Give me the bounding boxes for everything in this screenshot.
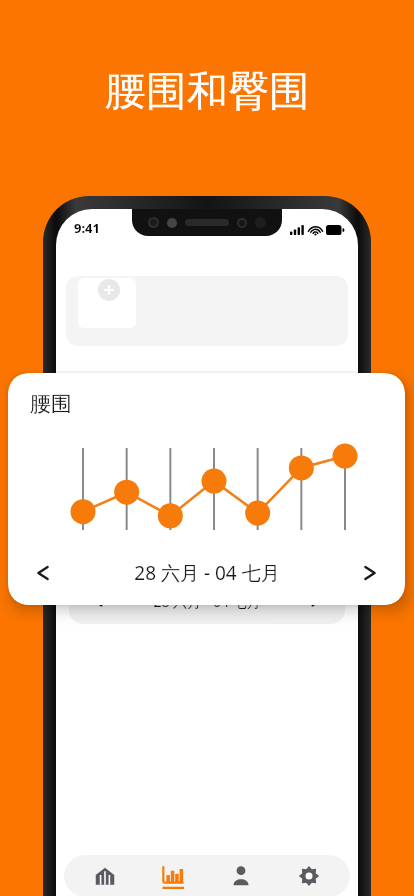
staticText: 腰围和臀围: [105, 66, 310, 118]
button[interactable]: Profile: [214, 855, 268, 896]
staticText: 28 六月 - 04 七月: [153, 592, 261, 611]
button[interactable]: Home: [78, 855, 132, 896]
staticText: 28 六月 - 04 七月: [134, 560, 280, 586]
button[interactable]: Previous week: [83, 586, 113, 616]
button[interactable]: [66, 276, 348, 346]
button[interactable]: Next week: [355, 558, 385, 588]
button[interactable]: Settings: [282, 855, 336, 896]
button[interactable]: Previous week: [28, 558, 58, 588]
button[interactable]: Statistics: [146, 855, 200, 896]
staticText: 9:41: [74, 219, 100, 237]
button[interactable]: 臀围: [69, 438, 345, 624]
button[interactable]: Next week: [301, 586, 331, 616]
staticText: 腰围: [30, 391, 72, 417]
button[interactable]: 腰围: [8, 373, 405, 605]
